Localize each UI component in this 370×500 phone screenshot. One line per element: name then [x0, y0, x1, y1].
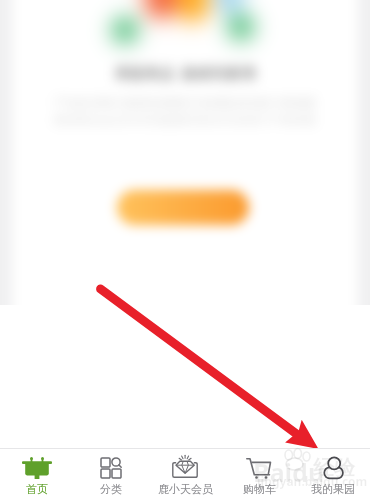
staticText: 果园果品 新鲜到家果	[114, 63, 257, 83]
staticText: Baidu	[253, 455, 325, 489]
button[interactable]: 我的果园	[296, 449, 370, 496]
staticText: 购物车	[243, 482, 276, 496]
staticText: jingyan.baidu.com	[257, 473, 368, 489]
staticText: 我的果园	[311, 482, 355, 496]
button[interactable]: 首页	[0, 449, 74, 496]
staticText: 分类	[100, 482, 122, 496]
button[interactable]: 鹿小天会员	[148, 449, 222, 496]
button[interactable]: 购物车	[222, 449, 296, 496]
staticText: 鹿小天会员	[158, 482, 213, 496]
staticText: 首页	[26, 482, 48, 496]
staticText: 经验	[313, 455, 355, 481]
button[interactable]: 分类	[74, 449, 148, 496]
